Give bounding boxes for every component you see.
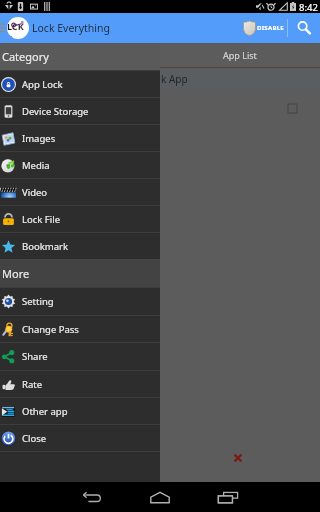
staticText: DISABLE [257, 24, 284, 32]
staticText: Change Pass [22, 323, 79, 336]
button[interactable]: Other app [0, 398, 160, 424]
staticText: App Lock [22, 78, 63, 91]
staticText: Category [2, 49, 49, 64]
staticText: More [2, 266, 30, 281]
button[interactable]: Close [0, 425, 160, 451]
button[interactable]: Media [0, 152, 160, 178]
button[interactable]: Rate [0, 371, 160, 397]
staticText: Share [22, 350, 48, 363]
button[interactable]: App Lock [0, 71, 160, 97]
staticText: Video [22, 186, 48, 199]
staticText: LCK R [7, 20, 29, 39]
staticText: Lock Everything [32, 21, 110, 35]
button[interactable]: DISABLE [243, 13, 287, 43]
button[interactable]: Setting [0, 288, 160, 315]
staticText: Lock File [22, 213, 61, 226]
staticText: Other app [22, 405, 68, 418]
staticText: Rate [22, 378, 43, 391]
staticText: Images [22, 132, 56, 145]
staticText: Media [22, 159, 50, 172]
staticText: Setting [22, 295, 54, 308]
staticText: 8:42 [299, 1, 318, 14]
button[interactable]: Search [288, 13, 320, 43]
button[interactable]: Device Storage [0, 98, 160, 124]
button[interactable]: App List [160, 43, 320, 67]
staticText: App List [223, 49, 257, 61]
button[interactable]: Change Pass [0, 316, 160, 342]
staticText: Device Storage [22, 105, 89, 118]
staticText: Close [22, 432, 47, 445]
staticText: k App [161, 72, 188, 86]
button[interactable]: Bookmark [0, 233, 160, 259]
button[interactable]: Recents [206, 482, 250, 512]
button[interactable]: Lock File [0, 206, 160, 232]
button[interactable]: Video [0, 179, 160, 205]
button[interactable]: Back [70, 482, 114, 512]
button[interactable]: Home [138, 482, 182, 512]
staticText: Bookmark [22, 240, 68, 253]
button[interactable]: Images [0, 125, 160, 151]
button[interactable]: Share [0, 343, 160, 370]
